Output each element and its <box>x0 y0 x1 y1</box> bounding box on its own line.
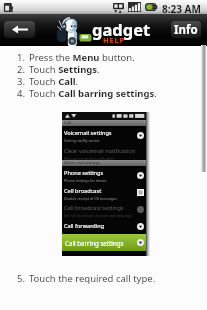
staticText: Remove voicemail notification <box>64 156 115 161</box>
staticText: HELP <box>103 35 125 45</box>
staticText: Touch the required call type. <box>29 272 156 285</box>
staticText: 5. <box>17 272 25 285</box>
staticText: 4. <box>17 87 25 100</box>
button[interactable]: Voicemail settings <box>62 126 146 144</box>
staticText: 1. <box>17 51 25 64</box>
staticText: Info <box>174 22 198 38</box>
staticText: Call barring settings <box>65 239 124 247</box>
staticText: Setting via My carrier <box>64 138 100 143</box>
button[interactable]: Cell broadcast <box>62 184 146 201</box>
staticText: Touch Call. <box>29 75 79 88</box>
staticText: 8:23 AM <box>162 2 201 16</box>
staticText: Clear voicemail notification <box>64 147 136 155</box>
button[interactable]: Phone settings <box>62 166 146 184</box>
staticText: Disable receipt of CB messages <box>64 196 117 201</box>
staticText: Phone settings for device <box>64 178 107 183</box>
button[interactable]: Call forwarding <box>62 218 146 234</box>
staticText: 2. <box>17 63 25 76</box>
button[interactable]: Info <box>171 21 201 38</box>
staticText: Call <box>64 120 72 126</box>
staticText: Phone settings <box>64 169 104 177</box>
staticText: Touch Settings. <box>29 63 100 76</box>
staticText: Press the Menu button. <box>29 51 135 64</box>
staticText: gadget <box>92 18 151 40</box>
staticText: Set cell broadcast channel and language <box>64 213 133 218</box>
staticText: Cell broadcast <box>64 187 102 195</box>
button[interactable]: Back <box>4 21 35 38</box>
staticText: Cell broadcast settings <box>64 204 124 212</box>
staticText: 3. <box>17 75 25 88</box>
button[interactable]: Clear voicemail notification <box>62 144 146 160</box>
staticText: Call forwarding <box>64 222 105 230</box>
button[interactable]: Call barring settings <box>62 234 146 251</box>
staticText: Other call settings <box>64 160 100 166</box>
button[interactable]: Cell broadcast settings <box>62 201 146 218</box>
staticText: Voicemail settings <box>64 129 112 137</box>
staticText: Touch Call barring settings. <box>29 87 157 100</box>
